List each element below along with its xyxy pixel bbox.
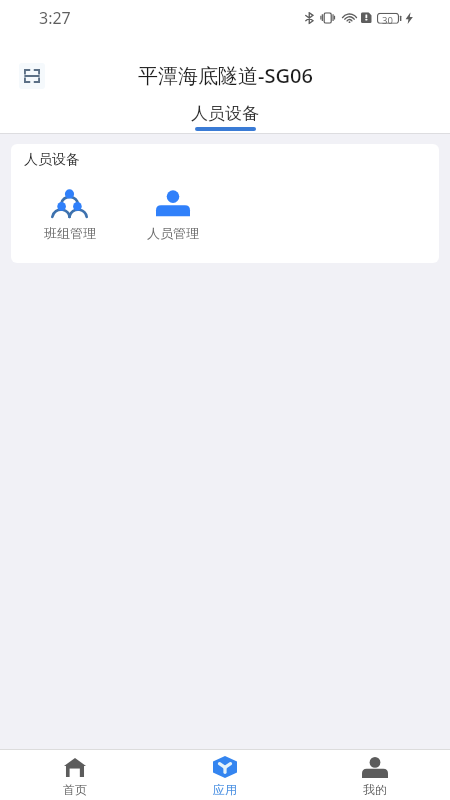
staticText: 平潭海底隧道-SG06 <box>138 62 313 89</box>
staticText: 30 <box>382 14 393 27</box>
staticText: 班组管理 <box>44 225 96 241</box>
button[interactable]: Scan <box>13 57 50 94</box>
staticText: 应用 <box>213 782 237 797</box>
staticText: 我的 <box>363 782 387 797</box>
button[interactable]: 首页 <box>0 750 150 800</box>
staticText: 人员管理 <box>147 225 199 241</box>
button[interactable]: 人员管理 <box>121 189 224 241</box>
staticText: 首页 <box>63 782 87 797</box>
staticText: 人员设备 <box>24 151 80 169</box>
button[interactable]: 应用 <box>150 750 300 800</box>
staticText: 3:27 <box>39 7 71 29</box>
button[interactable]: 人员设备 <box>191 103 259 131</box>
button[interactable]: 班组管理 <box>18 189 121 241</box>
staticText: 人员设备 <box>191 103 259 124</box>
button[interactable]: 我的 <box>300 750 450 800</box>
